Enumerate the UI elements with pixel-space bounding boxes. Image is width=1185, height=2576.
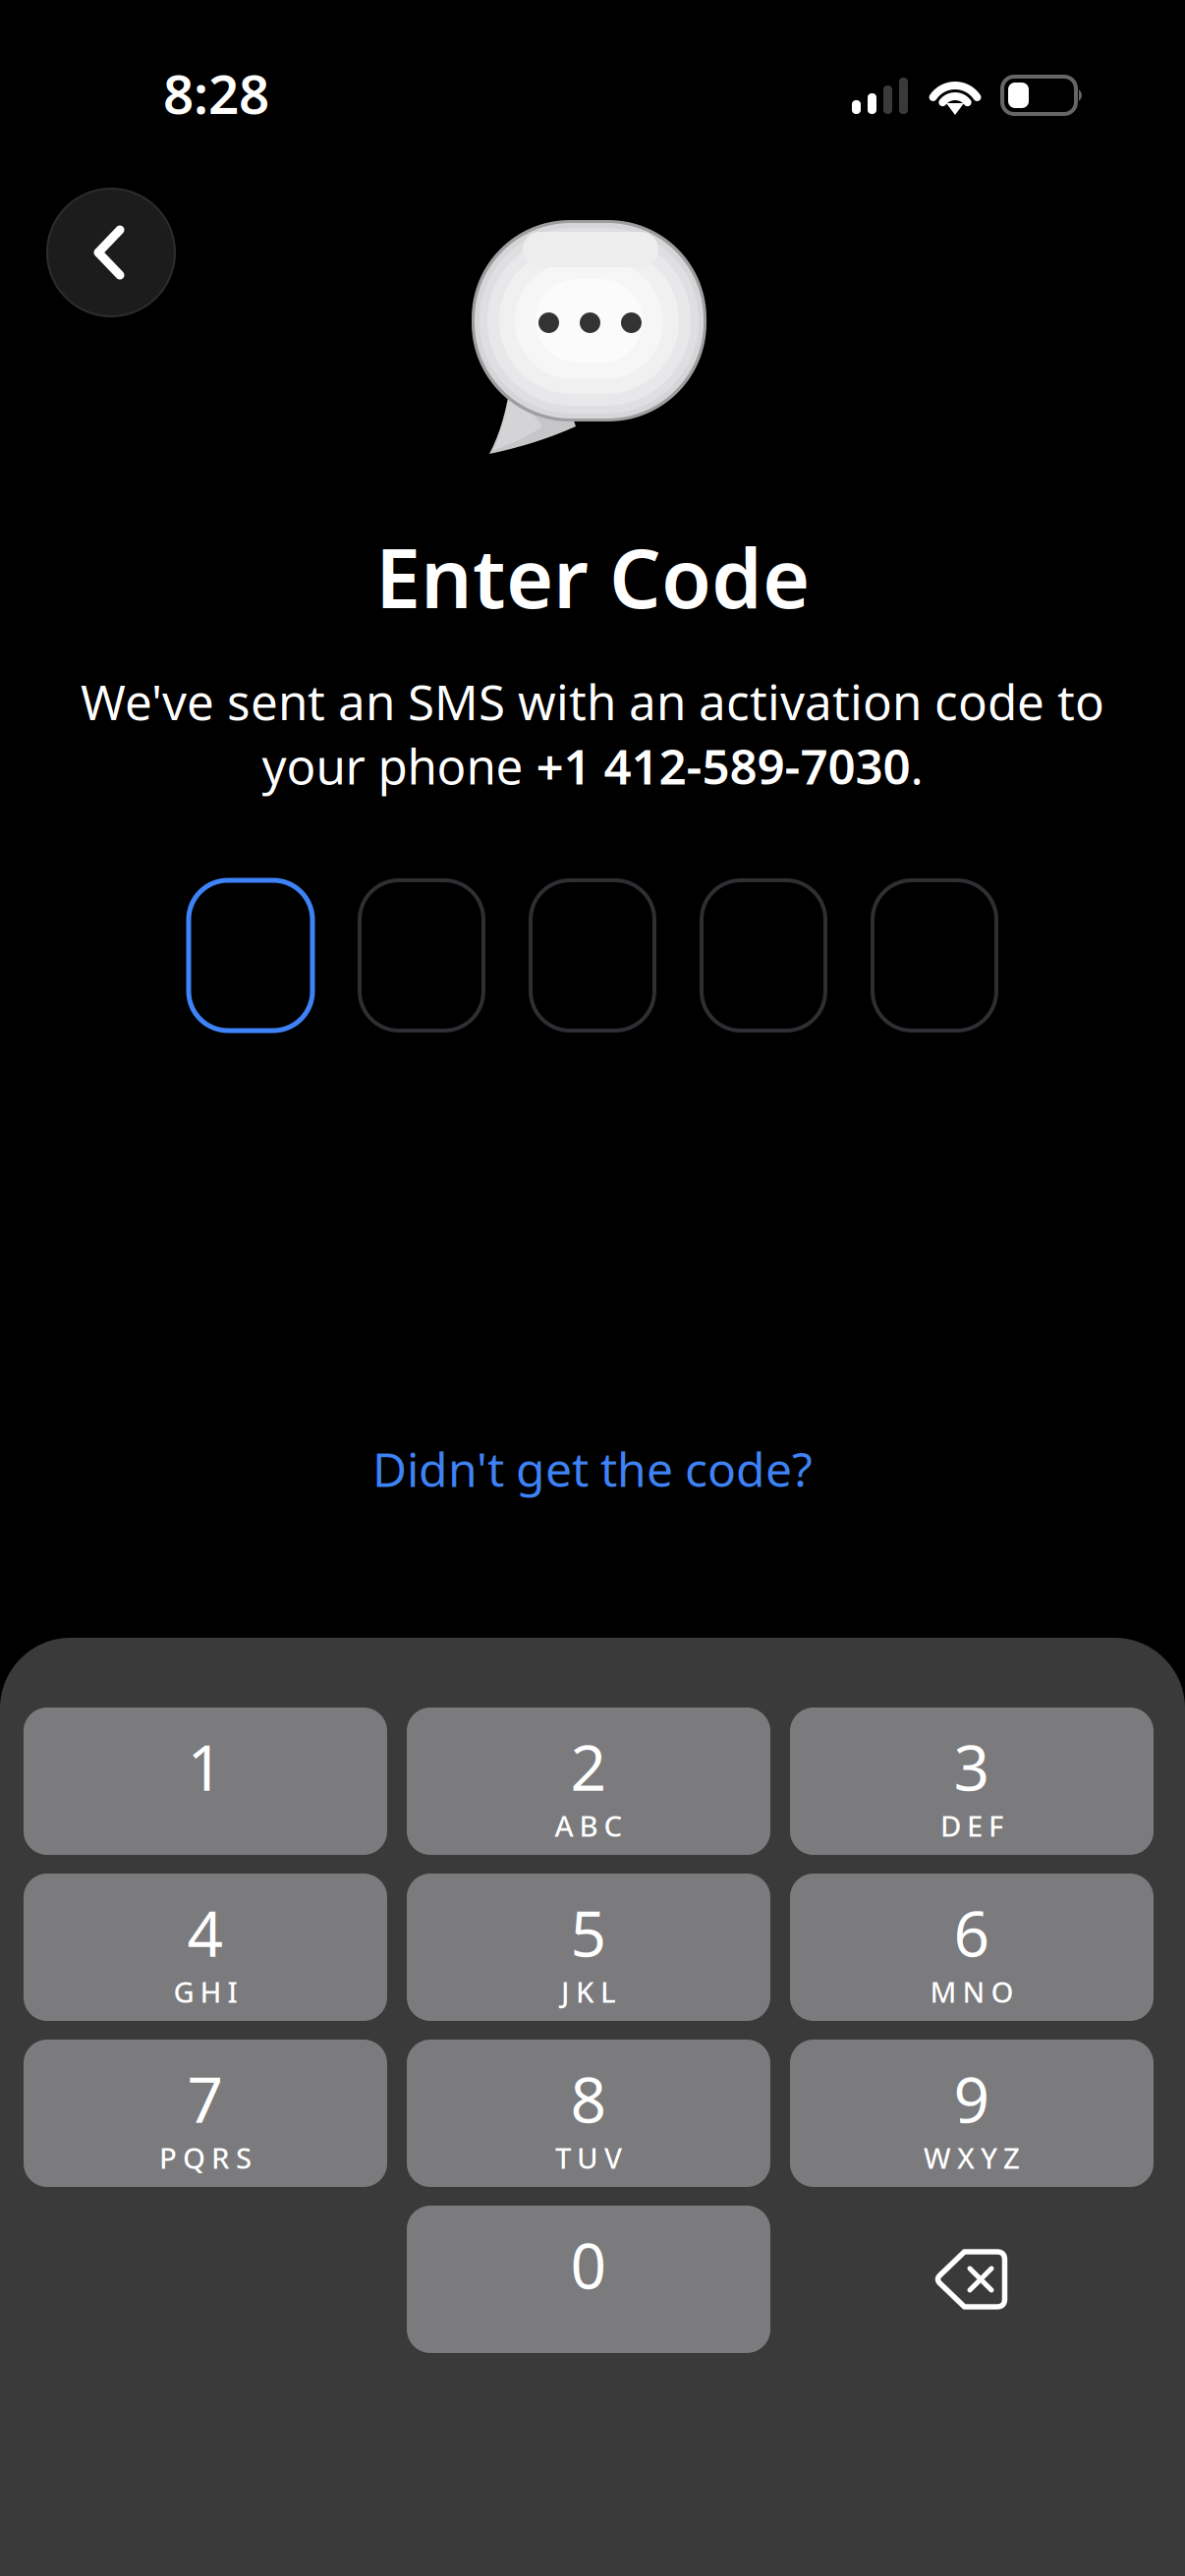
staticText: Enter Code	[375, 523, 810, 631]
staticText: DEF	[940, 1806, 1003, 1845]
staticText: 4	[187, 1891, 224, 1974]
button[interactable]: 3	[790, 1708, 1154, 1855]
staticText: 8:28	[163, 57, 269, 129]
button[interactable]: Code digit 3	[531, 880, 654, 1031]
button[interactable]: Delete	[790, 2206, 1154, 2353]
button[interactable]: 2	[407, 1708, 770, 1855]
staticText: 1	[187, 1725, 224, 1808]
button[interactable]: Code digit 5	[873, 880, 996, 1031]
button[interactable]: 6	[790, 1874, 1154, 2021]
staticText: Didn't get the code?	[372, 1437, 813, 1500]
staticText: GHI	[173, 1972, 237, 2011]
button[interactable]: Code digit 4	[702, 880, 825, 1031]
staticText: 9	[954, 2057, 990, 2140]
staticText: JKL	[561, 1972, 616, 2011]
staticText: 0	[570, 2223, 607, 2306]
button[interactable]: 9	[790, 2040, 1154, 2187]
staticText: 7	[187, 2057, 224, 2140]
staticText: 5	[570, 1891, 607, 1974]
button[interactable]: 4	[24, 1874, 387, 2021]
button[interactable]: Code digit 2	[360, 880, 483, 1031]
button[interactable]: 8	[407, 2040, 770, 2187]
staticText: 6	[954, 1891, 990, 1974]
staticText: We've sent an SMS with an activation cod…	[81, 669, 1104, 733]
button[interactable]: Back	[47, 189, 175, 316]
staticText: PQRS	[159, 2138, 252, 2177]
button[interactable]: 1	[24, 1708, 387, 1855]
button[interactable]: 7	[24, 2040, 387, 2187]
button[interactable]: Code digit 1	[189, 880, 312, 1031]
staticText: 8	[570, 2057, 607, 2140]
staticText: TUV	[555, 2138, 622, 2177]
button[interactable]: 5	[407, 1874, 770, 2021]
button[interactable]: Didn't get the code?	[0, 1437, 1185, 1500]
staticText: WXYZ	[924, 2138, 1020, 2177]
staticText: your phone +1 412-589-7030.	[262, 733, 923, 798]
staticText: MNO	[930, 1972, 1014, 2011]
staticText: 2	[570, 1725, 607, 1808]
button[interactable]: 0	[407, 2206, 770, 2353]
staticText: 3	[954, 1725, 990, 1808]
staticText: ABC	[555, 1806, 622, 1845]
